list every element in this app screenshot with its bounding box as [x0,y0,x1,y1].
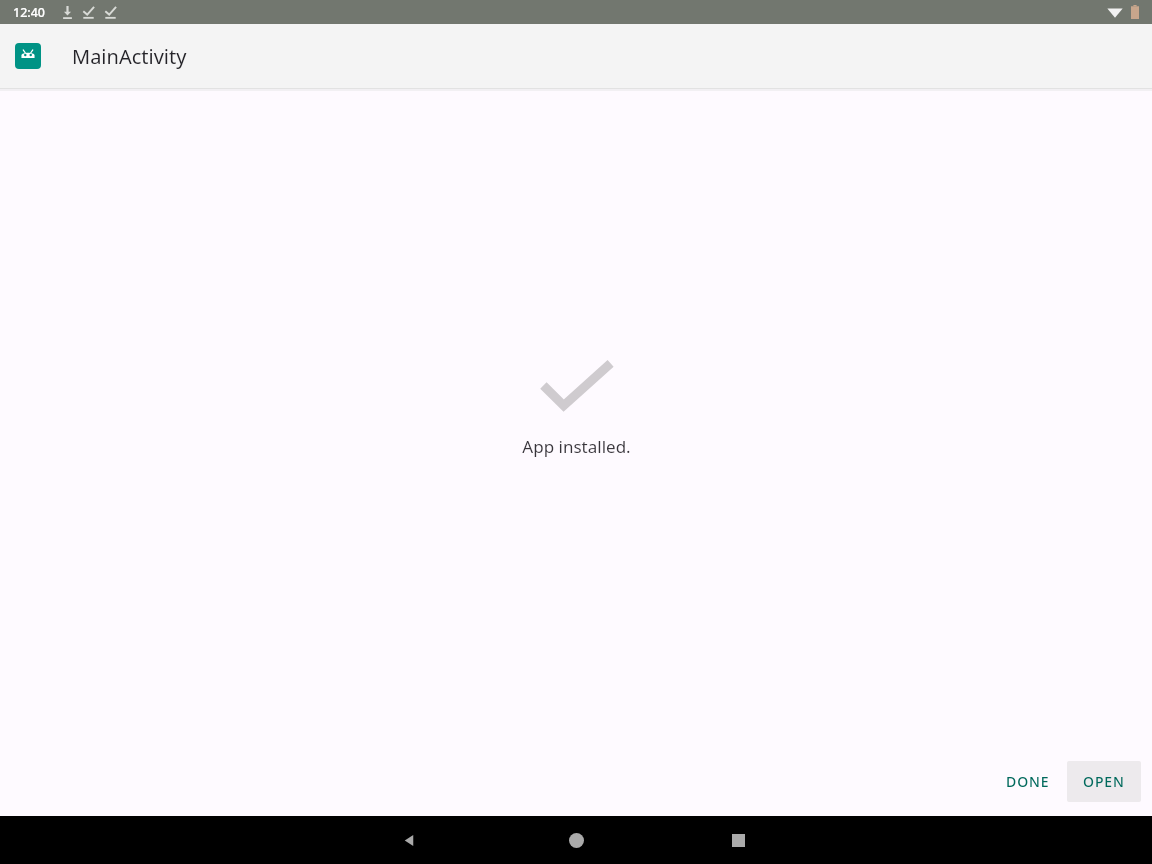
staticText: MainActivity [72,43,187,70]
button[interactable]: Recent apps [714,816,762,864]
button[interactable]: DONE [990,761,1066,802]
staticText: DONE [1006,772,1050,791]
staticText: App installed. [522,435,631,458]
button[interactable]: Home [552,816,600,864]
button[interactable]: Back [385,816,433,864]
button[interactable]: OPEN [1067,761,1141,802]
staticText: OPEN [1083,772,1125,791]
staticText: 12:40 [13,4,46,21]
